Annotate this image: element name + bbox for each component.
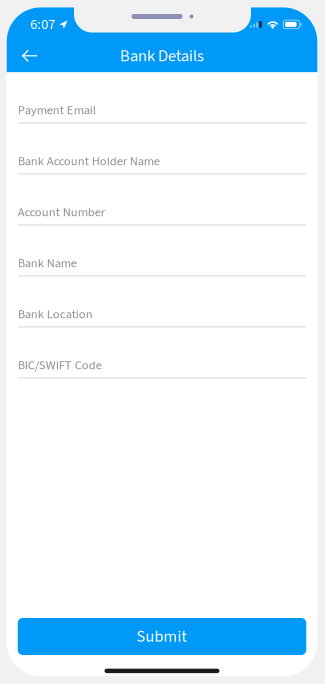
button[interactable]: Bank Location	[18, 276, 306, 327]
button[interactable]: Back	[22, 43, 58, 69]
staticText: Bank Details	[120, 44, 204, 68]
staticText: Account Number	[18, 203, 105, 221]
staticText: Bank Location	[18, 305, 93, 323]
button[interactable]: Account Number	[18, 174, 306, 225]
button[interactable]: Bank Account Holder Name	[18, 123, 306, 174]
button[interactable]: Payment Email	[18, 72, 306, 123]
staticText: Submit	[136, 625, 187, 648]
button[interactable]: Submit	[18, 618, 306, 655]
staticText: Payment Email	[18, 101, 96, 119]
button[interactable]: BIC/SWIFT Code	[18, 327, 306, 378]
staticText: Bank Account Holder Name	[18, 152, 160, 170]
staticText: 6:07	[30, 14, 55, 35]
button[interactable]: Bank Name	[18, 225, 306, 276]
staticText: Bank Name	[18, 254, 77, 272]
staticText: BIC/SWIFT Code	[18, 356, 102, 374]
